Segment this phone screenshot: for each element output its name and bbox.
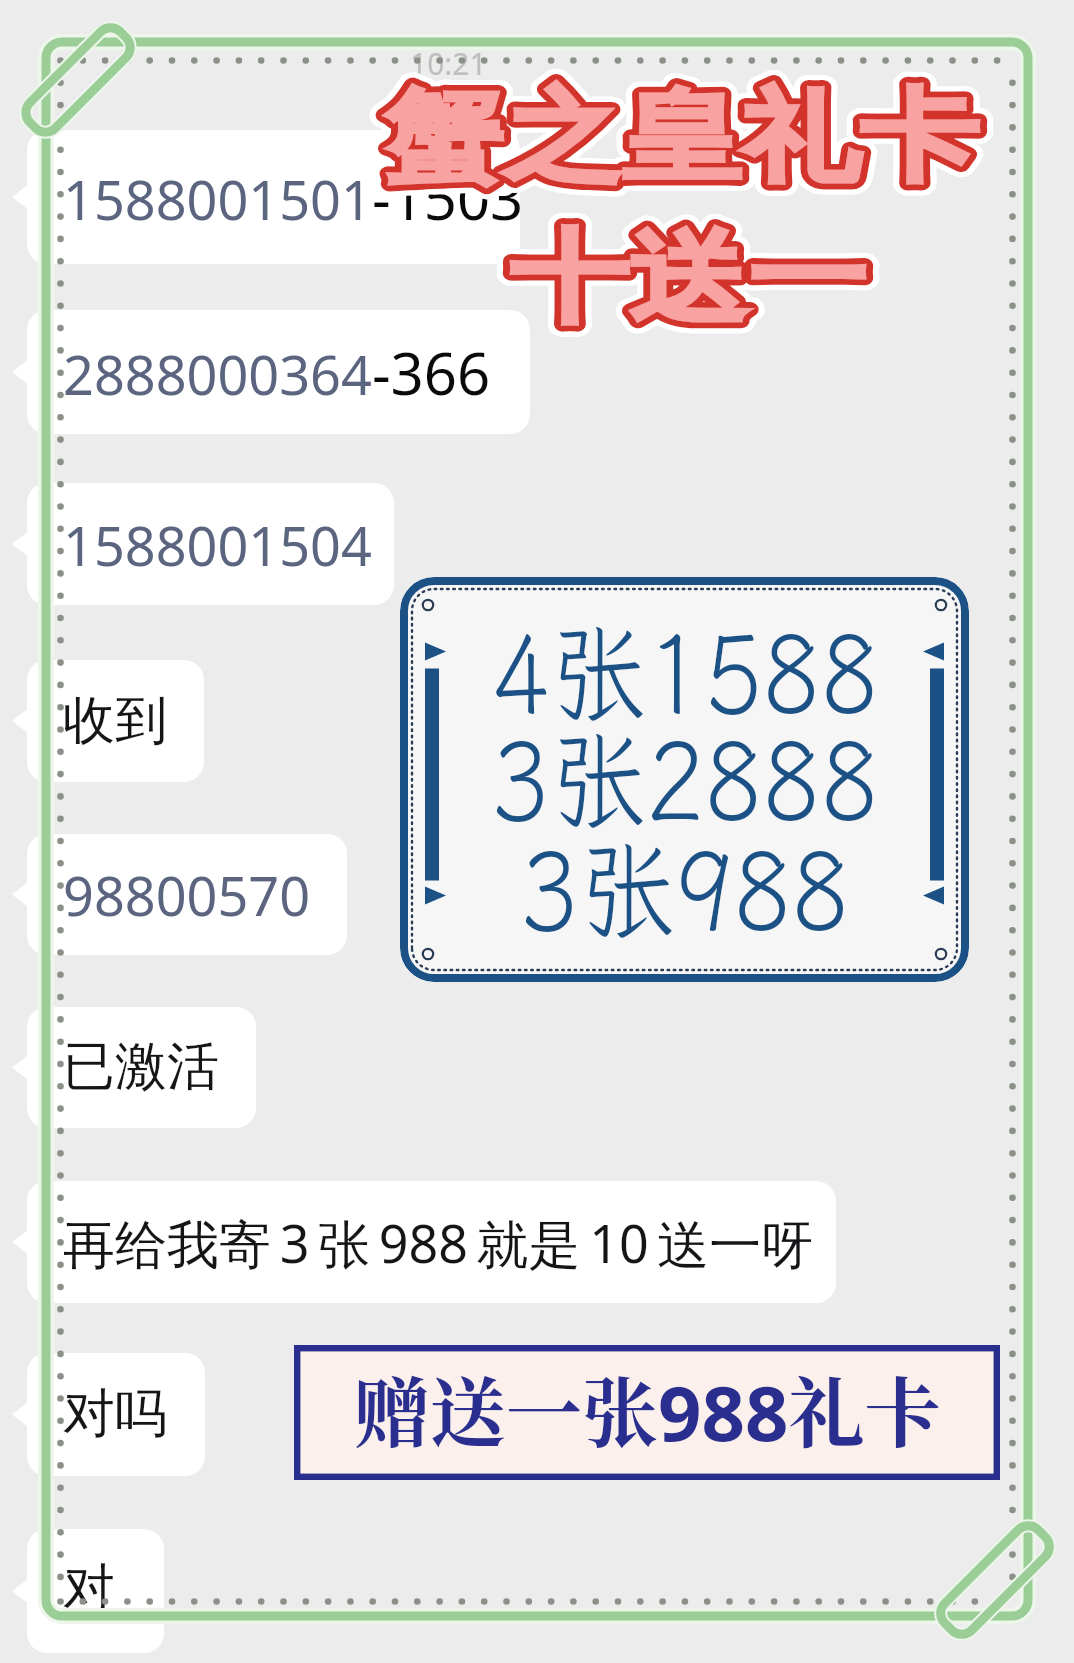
button[interactable] [27,130,520,264]
button[interactable] [27,483,394,605]
staticText: 3张988 [520,815,850,963]
button[interactable] [27,1181,836,1303]
staticText: 2888000364-366 [63,333,491,412]
staticText: 蟹之皇礼卡 [384,74,979,200]
button[interactable] [27,310,530,434]
staticText: 十送一 [510,215,867,341]
button[interactable] [27,1353,205,1476]
staticText: 十送一 [510,215,867,341]
staticText: 蟹之皇礼卡 [384,74,979,200]
button[interactable] [27,1007,256,1128]
staticText: 收到 [63,688,167,754]
button[interactable]: Gift card quantities [400,577,969,982]
staticText: 赠送一张988礼卡 [354,1354,941,1464]
staticText: 已激活 [63,1034,219,1100]
staticText: 4张1588 [491,598,879,746]
staticText: 蟹之皇礼卡 [384,74,979,200]
staticText: 十送一 [510,215,867,341]
button[interactable] [27,834,347,955]
button[interactable] [27,660,204,782]
staticText: 1588001504 [63,508,372,582]
staticText: 98800570 [63,858,311,932]
staticText: 1588001501-1503 [63,158,524,237]
staticText: 对吗 [63,1381,167,1447]
staticText: 10:21 [410,43,487,84]
staticText: 再给我寄 3 张 988 就是 10 送一呀 [63,1207,814,1278]
button[interactable] [27,1529,164,1653]
staticText: 3张2888 [491,705,879,853]
staticText: 对 [63,1556,115,1622]
button[interactable]: 赠送一张988礼卡 [294,1345,1000,1480]
